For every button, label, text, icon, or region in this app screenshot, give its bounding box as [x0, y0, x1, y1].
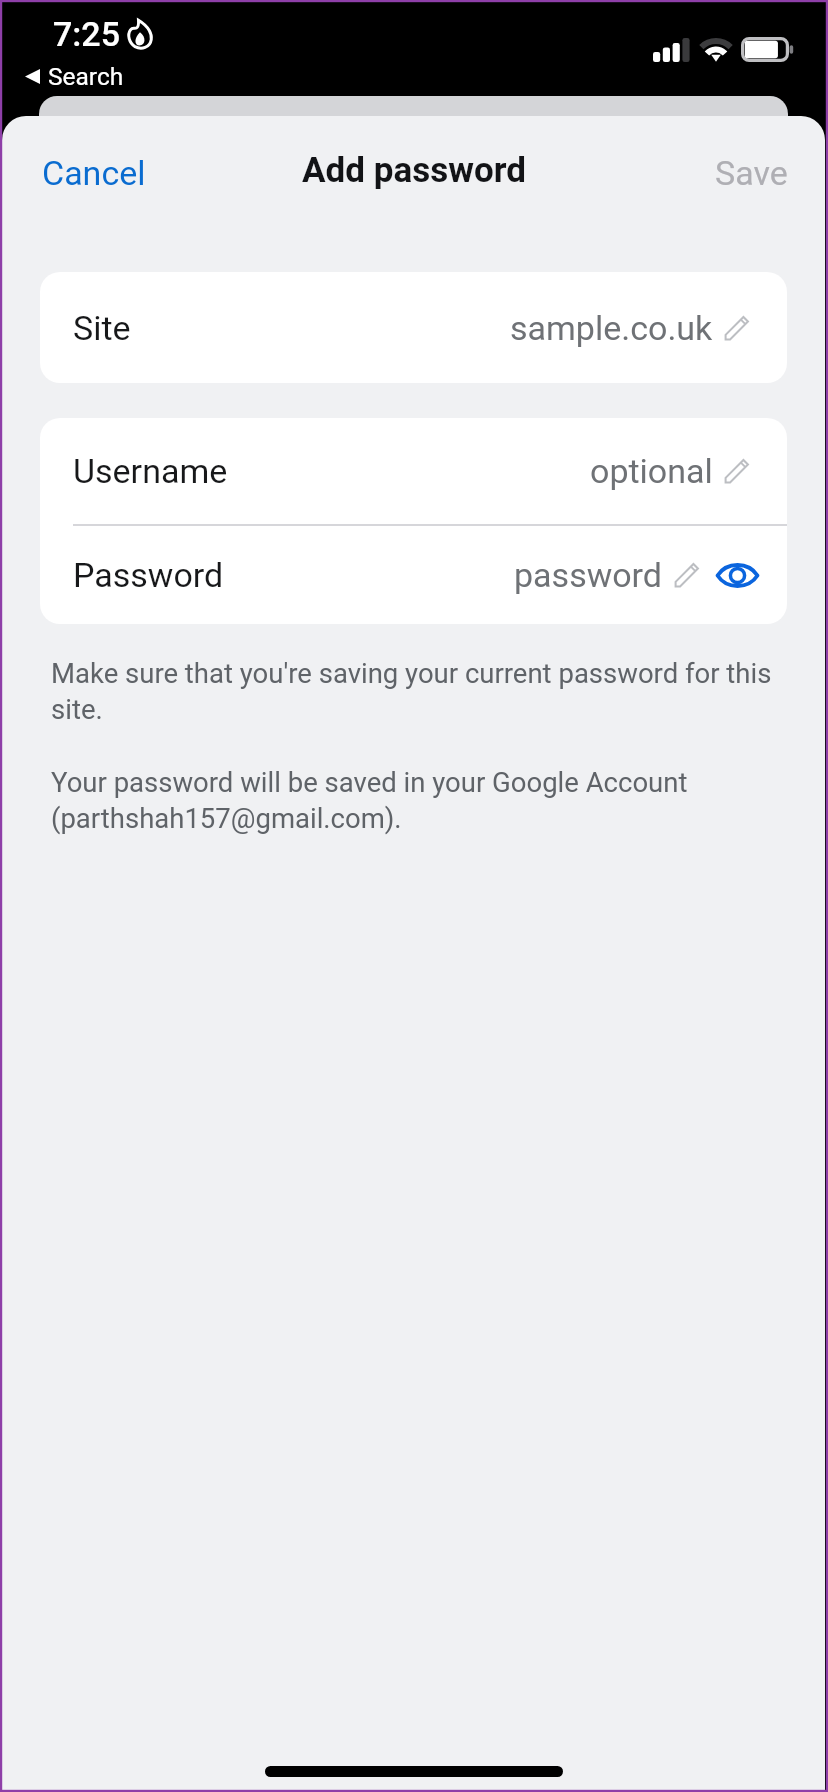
staticText: Add password — [302, 150, 526, 191]
button[interactable]: Search — [25, 62, 124, 91]
staticText: Username — [73, 451, 228, 491]
staticText: Cancel — [42, 153, 146, 193]
button[interactable]: Edit — [669, 557, 705, 593]
button[interactable]: Show password — [715, 559, 760, 592]
staticText: Save — [715, 153, 788, 193]
button[interactable]: Cancel — [16, 137, 172, 209]
staticText: Site — [73, 308, 131, 348]
button[interactable]: Edit — [719, 310, 755, 346]
staticText: Password — [73, 555, 224, 595]
staticText: sample.co.uk — [510, 308, 713, 348]
staticText: optional — [590, 451, 713, 491]
button[interactable]: Username — [40, 418, 787, 524]
button[interactable]: Site — [40, 272, 787, 383]
staticText: Search — [48, 62, 124, 91]
button[interactable]: Save — [689, 137, 814, 209]
button[interactable]: Password — [40, 526, 787, 624]
staticText: Make sure that you're saving your curren… — [51, 657, 785, 725]
button[interactable]: Edit — [719, 453, 755, 489]
staticText: password — [514, 555, 663, 595]
staticText: 7:25 — [53, 14, 120, 54]
staticText: Your password will be saved in your Goog… — [51, 766, 785, 834]
